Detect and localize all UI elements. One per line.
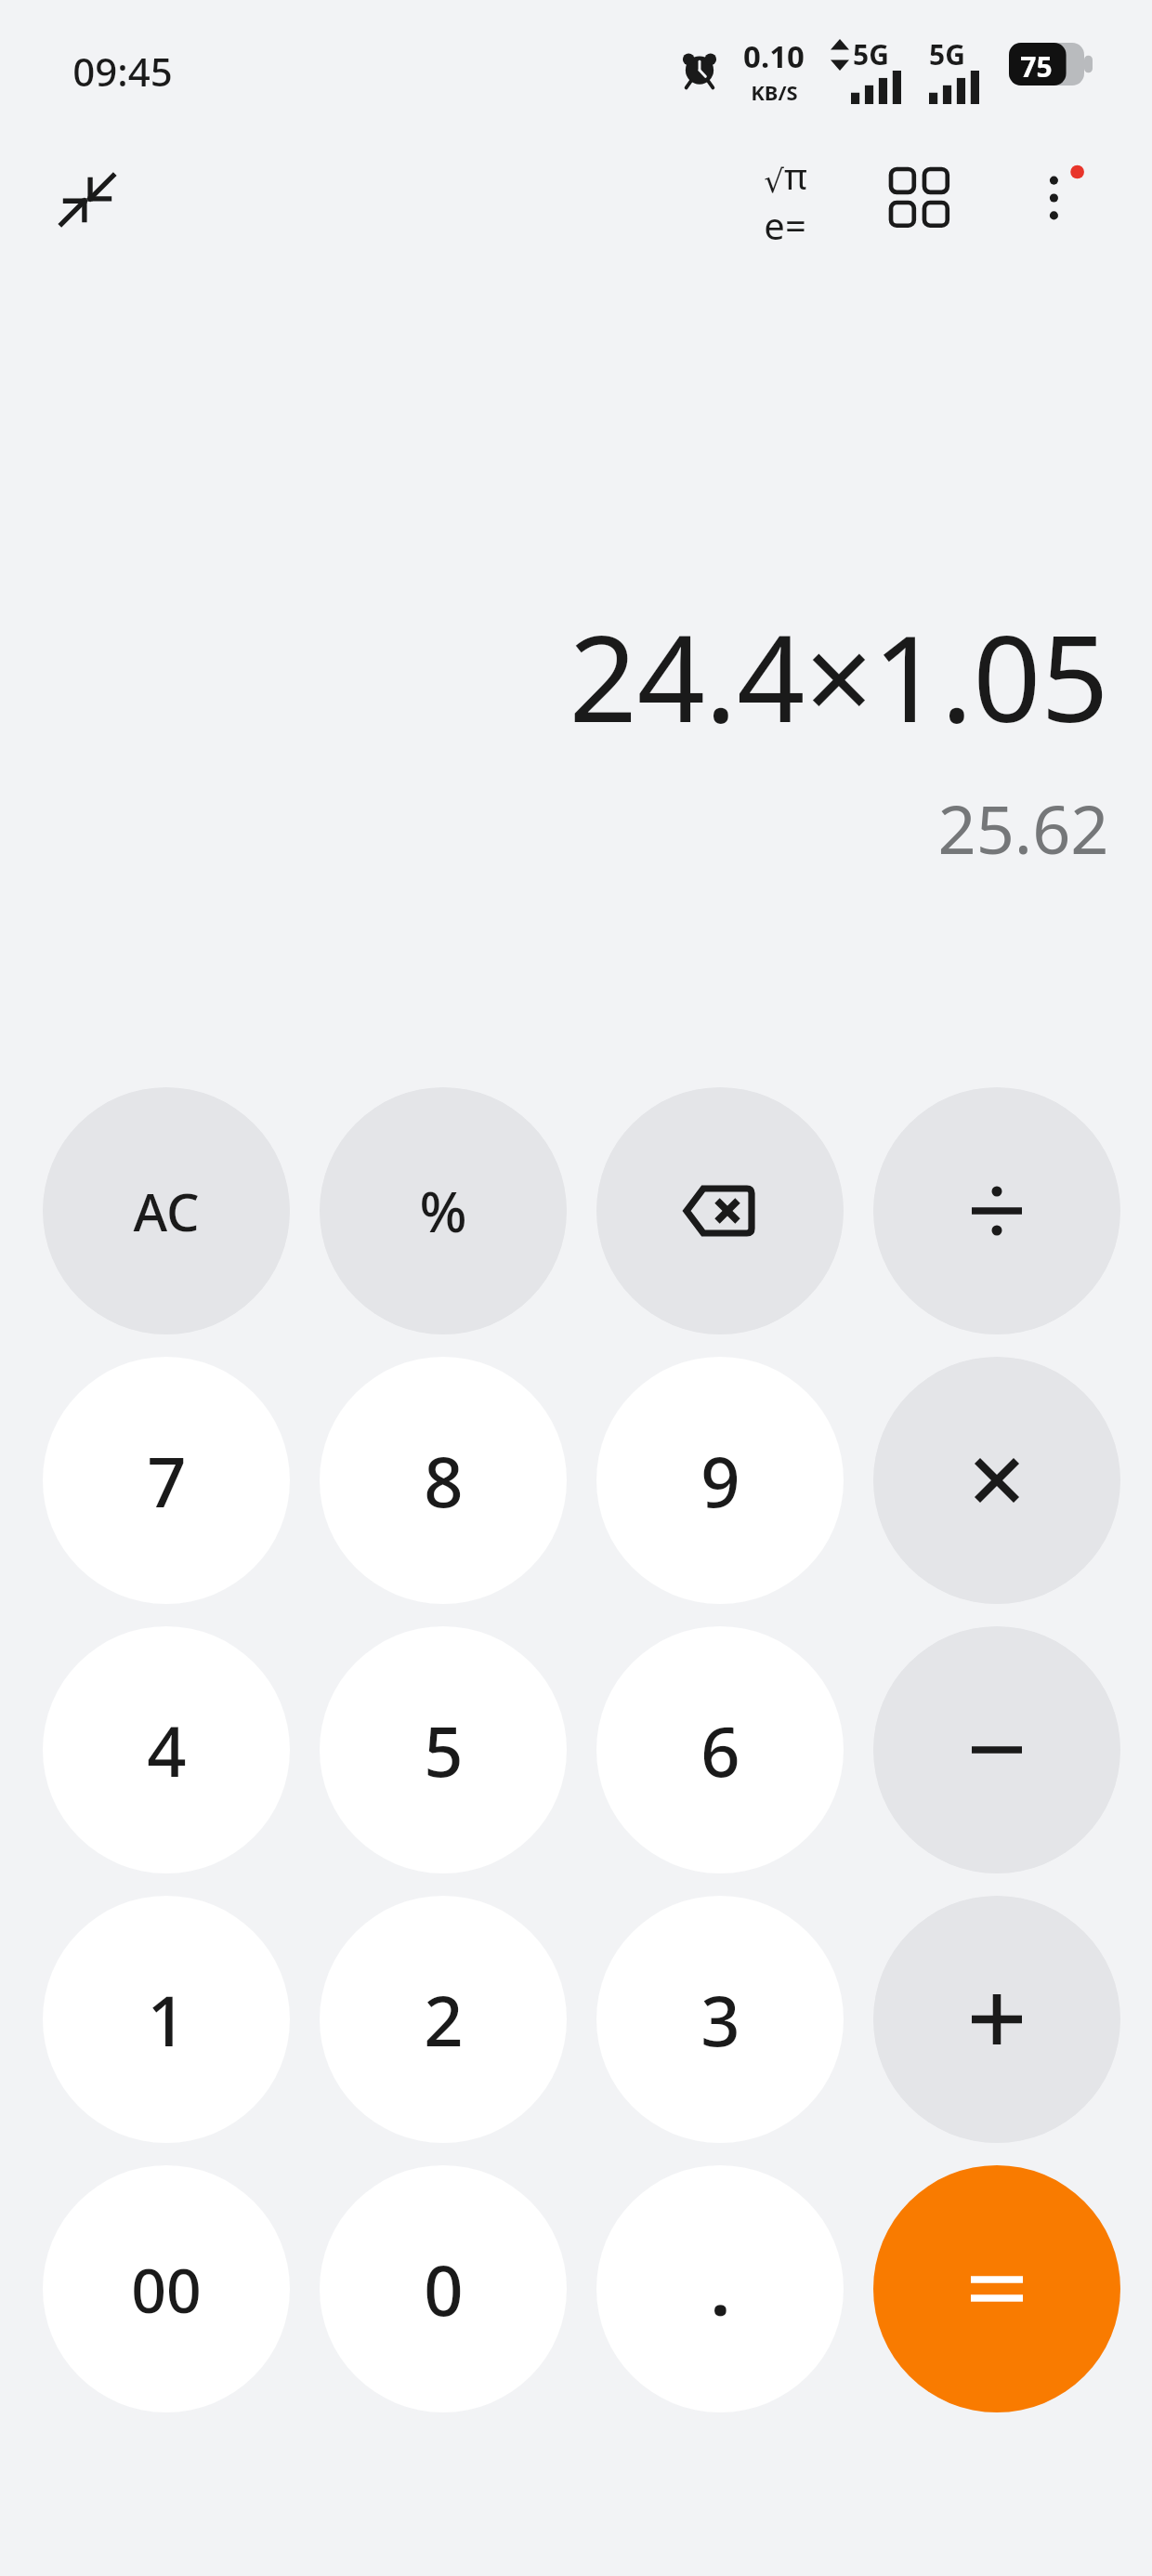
button[interactable]: 4 [43, 1626, 290, 1873]
staticText: 6 [700, 1703, 740, 1797]
button[interactable]: Unit converter [873, 151, 966, 244]
button[interactable]: AC [43, 1087, 290, 1334]
staticText: 5G [929, 35, 965, 73]
staticText: 8 [424, 1434, 464, 1528]
staticText: 4 [147, 1703, 187, 1797]
button[interactable]: 9 [596, 1357, 844, 1604]
staticText: 9 [700, 1434, 740, 1528]
button[interactable]: 8 [320, 1357, 567, 1604]
staticText: √ [764, 163, 784, 200]
staticText: 2 [424, 1973, 464, 2067]
staticText: 25.62 [937, 782, 1109, 874]
button[interactable]: 6 [596, 1626, 844, 1873]
staticText: 0.10 [743, 35, 805, 77]
staticText: KB/S [751, 78, 798, 106]
button[interactable]: 3 [596, 1896, 844, 2143]
staticText: 75 [1020, 47, 1053, 85]
button[interactable]: % [320, 1087, 567, 1334]
staticText: 09:45 [72, 45, 173, 98]
button[interactable]: Divide [873, 1087, 1120, 1334]
button[interactable]: 0 [320, 2165, 567, 2412]
button[interactable]: Equals [873, 2165, 1120, 2412]
button[interactable]: Collapse [41, 153, 134, 246]
button[interactable]: More options [1013, 151, 1106, 244]
button[interactable]: Multiply [873, 1357, 1120, 1604]
staticText: % [419, 1173, 467, 1249]
staticText: 5G [853, 35, 889, 73]
button[interactable]: Backspace [596, 1087, 844, 1334]
button[interactable]: 7 [43, 1357, 290, 1604]
staticText: 7 [147, 1434, 187, 1528]
staticText: 1 [147, 1973, 187, 2067]
staticText: = [785, 200, 806, 244]
button[interactable]: 2 [320, 1896, 567, 2143]
button[interactable]: 5 [320, 1626, 567, 1873]
staticText: 00 [131, 2247, 202, 2331]
staticText: 0 [424, 2242, 464, 2336]
staticText: 5 [424, 1703, 464, 1797]
staticText: 24.4×1.05 [569, 595, 1109, 756]
staticText: . [711, 2242, 730, 2336]
staticText: π [784, 151, 807, 200]
button[interactable]: . [596, 2165, 844, 2412]
staticText: e [764, 200, 785, 244]
button[interactable]: Scientific mode [739, 151, 831, 244]
staticText: AC [133, 1176, 200, 1246]
button[interactable]: Minus [873, 1626, 1120, 1873]
button[interactable]: 00 [43, 2165, 290, 2412]
button[interactable]: Plus [873, 1896, 1120, 2143]
staticText: 3 [700, 1973, 740, 2067]
button[interactable]: 1 [43, 1896, 290, 2143]
